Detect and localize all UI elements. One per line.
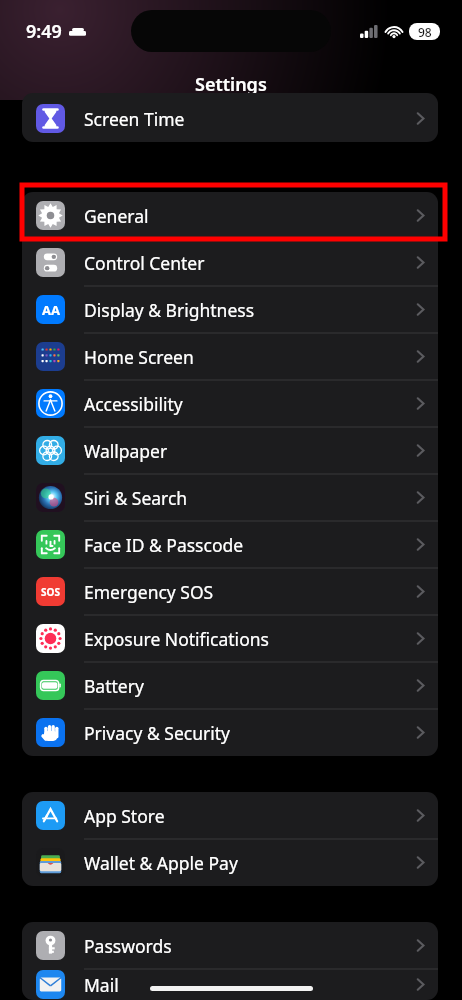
button[interactable]: Wallpaper: [22, 427, 438, 474]
staticText: SOS: [41, 585, 60, 599]
staticText: AA: [42, 301, 60, 319]
button[interactable]: Battery: [22, 662, 438, 709]
staticText: Exposure Notifications: [84, 627, 269, 651]
button[interactable]: Control Center: [22, 239, 438, 286]
staticText: App Store: [84, 804, 165, 828]
staticText: Wallpaper: [84, 439, 168, 463]
staticText: Battery: [84, 674, 144, 698]
staticText: Settings: [195, 72, 267, 97]
staticText: Accessibility: [84, 392, 183, 416]
staticText: Control Center: [84, 251, 205, 275]
button[interactable]: Mail: [22, 969, 438, 1000]
staticText: Passwords: [84, 934, 172, 958]
button[interactable]: General: [22, 192, 438, 239]
button[interactable]: Screen Time: [22, 95, 438, 142]
button[interactable]: Siri & Search: [22, 474, 438, 521]
button[interactable]: Home Screen: [22, 333, 438, 380]
button[interactable]: Exposure Notifications: [22, 615, 438, 662]
button[interactable]: SOS: [22, 568, 438, 615]
staticText: Home Screen: [84, 345, 194, 369]
button[interactable]: App Store: [22, 792, 438, 839]
staticText: Face ID & Passcode: [84, 533, 244, 557]
staticText: Mail: [84, 973, 119, 997]
staticText: Privacy & Security: [84, 721, 230, 745]
staticText: Screen Time: [84, 107, 185, 131]
staticText: Emergency SOS: [84, 580, 214, 604]
staticText: Display & Brightness: [84, 298, 255, 322]
button[interactable]: Face ID & Passcode: [22, 521, 438, 568]
button[interactable]: Passwords: [22, 922, 438, 969]
button[interactable]: AA: [22, 286, 438, 333]
staticText: Siri & Search: [84, 486, 188, 510]
staticText: 98: [418, 24, 432, 40]
button[interactable]: Accessibility: [22, 380, 438, 427]
staticText: 9:49: [26, 19, 62, 44]
staticText: General: [84, 204, 149, 228]
staticText: Wallet & Apple Pay: [84, 851, 238, 875]
button[interactable]: Wallet & Apple Pay: [22, 839, 438, 886]
button[interactable]: Privacy & Security: [22, 709, 438, 756]
